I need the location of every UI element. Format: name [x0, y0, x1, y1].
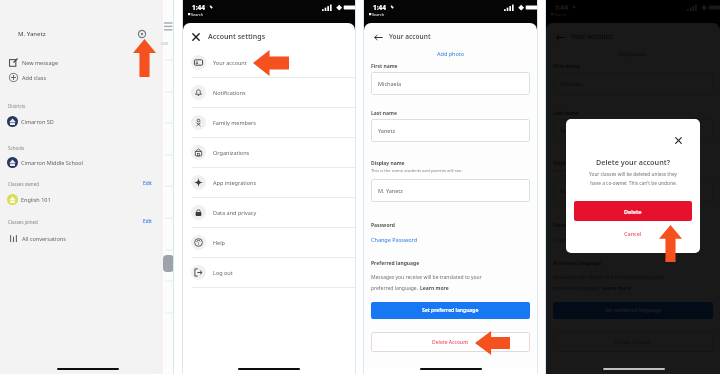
- staticText: Cimarron Middle School: [21, 159, 83, 166]
- staticText: Display name: [371, 160, 405, 167]
- staticText: Delete Account: [432, 339, 469, 346]
- staticText: Add class: [22, 74, 47, 81]
- button[interactable]: Data and privacy: [183, 198, 355, 227]
- staticText: All conversations: [22, 235, 66, 242]
- staticText: LOG: [161, 41, 169, 46]
- staticText: Your account: [213, 59, 247, 66]
- button[interactable]: Help: [183, 228, 355, 257]
- staticText: 1:44: [192, 3, 205, 12]
- button[interactable]: App integrations: [183, 168, 355, 197]
- staticText: Cancel: [624, 230, 642, 237]
- staticText: Preferred language: [553, 260, 602, 267]
- button[interactable]: Add photo: [364, 48, 537, 59]
- button[interactable]: Change Password: [553, 236, 600, 243]
- staticText: This is the name students and parents wi…: [371, 168, 463, 174]
- staticText: Password: [371, 222, 395, 229]
- staticText: Cimarron SD: [21, 118, 54, 125]
- staticText: Delete: [624, 208, 642, 215]
- staticText: Log out: [213, 269, 233, 276]
- staticText: Set preferred language: [422, 307, 479, 314]
- staticText: Classes owned: [8, 181, 39, 187]
- staticText: Search: [372, 12, 385, 17]
- staticText: Yanetz: [560, 127, 577, 134]
- button[interactable]: Add class: [0, 70, 157, 84]
- staticText: Classes joined: [8, 219, 38, 225]
- staticText: Your account: [389, 32, 431, 41]
- button[interactable]: English 101: [0, 191, 157, 207]
- staticText: Set preferred language: [605, 307, 662, 314]
- button[interactable]: Log out: [183, 258, 355, 287]
- button[interactable]: Set preferred language: [553, 302, 713, 319]
- button[interactable]: Edit: [143, 180, 152, 187]
- button[interactable]: Back: [372, 31, 384, 43]
- staticText: Data and privacy: [213, 209, 257, 216]
- staticText: Add photo: [437, 50, 465, 57]
- button[interactable]: M. Yanetz: [18, 30, 46, 38]
- button[interactable]: Learn more: [602, 285, 631, 292]
- staticText: Last name: [553, 110, 579, 117]
- button[interactable]: Settings: [135, 27, 149, 41]
- staticText: English 101: [21, 196, 51, 203]
- staticText: Search: [191, 12, 204, 17]
- staticText: First name: [553, 63, 580, 70]
- button[interactable]: Notifications: [183, 78, 355, 107]
- staticText: preferred language.: [371, 285, 420, 292]
- staticText: Delete Account: [615, 339, 652, 346]
- button[interactable]: Delete: [574, 201, 692, 221]
- button[interactable]: New message: [0, 55, 157, 69]
- button[interactable]: Cimarron Middle School: [0, 154, 157, 170]
- button[interactable]: Close: [671, 133, 685, 147]
- staticText: Messages you receive will be translated …: [553, 274, 664, 281]
- staticText: 1:44: [373, 3, 386, 12]
- staticText: 1:44: [555, 3, 568, 12]
- button[interactable]: Set preferred language: [371, 302, 530, 319]
- staticText: First name: [371, 63, 398, 70]
- button[interactable]: Learn more: [420, 285, 449, 292]
- staticText: preferred language.: [553, 285, 602, 292]
- staticText: Organizations: [213, 149, 250, 156]
- staticText: Schools: [8, 145, 25, 151]
- button[interactable]: Organizations: [183, 138, 355, 167]
- staticText: Help: [213, 239, 225, 246]
- staticText: New message: [22, 59, 59, 66]
- staticText: This is the name students and parents wi…: [553, 168, 645, 174]
- staticText: Messages you receive will be translated …: [371, 274, 482, 281]
- staticText: Yanetz: [378, 127, 395, 134]
- staticText: Search: [554, 12, 567, 17]
- staticText: Last name: [371, 110, 397, 117]
- staticText: Preferred language: [371, 260, 420, 267]
- staticText: Display name: [553, 160, 587, 167]
- button[interactable]: Cancel: [566, 225, 700, 241]
- staticText: M. Yanetz: [560, 187, 585, 194]
- staticText: Family members: [213, 119, 256, 126]
- button[interactable]: Family members: [183, 108, 355, 137]
- staticText: M. Yanetz: [378, 187, 403, 194]
- button[interactable]: Close: [190, 31, 202, 43]
- staticText: Michaela: [378, 80, 402, 87]
- button[interactable]: All conversations: [0, 231, 157, 245]
- staticText: Password: [553, 222, 577, 229]
- button[interactable]: Edit: [143, 218, 152, 225]
- staticText: Your classes will be deleted unless they: [589, 171, 677, 178]
- staticText: Delete your account?: [566, 157, 700, 167]
- button[interactable]: Delete Account: [371, 332, 530, 352]
- staticText: Districts: [8, 103, 26, 109]
- staticText: Michaela: [560, 80, 584, 87]
- staticText: Your account: [571, 32, 613, 41]
- staticText: Account settings: [208, 32, 266, 42]
- button[interactable]: Back: [554, 31, 566, 43]
- staticText: have a co-owner. This can't be undone.: [590, 180, 677, 187]
- button[interactable]: Change Password: [371, 236, 418, 243]
- staticText: App integrations: [213, 179, 257, 186]
- staticText: Notifications: [213, 89, 246, 96]
- button[interactable]: Cimarron SD: [0, 113, 157, 129]
- staticText: Add photo: [619, 50, 647, 57]
- button[interactable]: Your account: [183, 48, 355, 77]
